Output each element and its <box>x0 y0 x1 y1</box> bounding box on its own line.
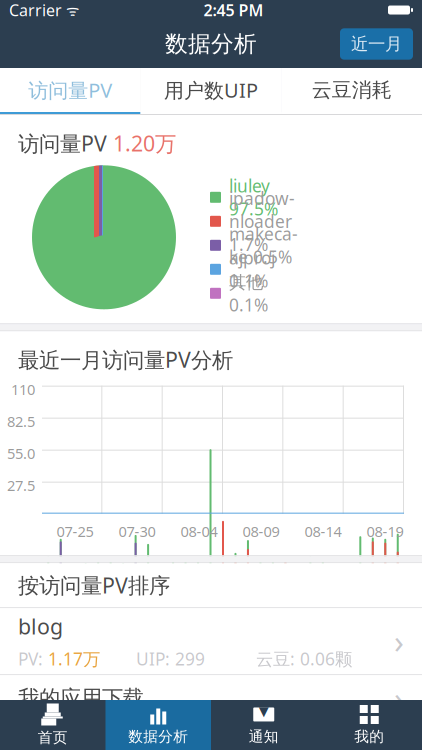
staticText: PV: <box>18 647 48 670</box>
staticText: › <box>394 620 404 662</box>
button[interactable]: 近一月 <box>340 28 413 60</box>
button[interactable]: 访问量PV <box>0 68 141 114</box>
button[interactable]: ▾ <box>211 700 316 750</box>
staticText: 云豆: 0.06颗 <box>256 647 352 670</box>
staticText: 最近一月访问量PV分析 <box>18 345 233 374</box>
staticText: 1.20万 <box>113 129 176 157</box>
staticText: 数据分析 <box>165 30 257 58</box>
staticText: liuley 97.5% <box>229 174 278 220</box>
staticText: ᯤ <box>62 0 79 20</box>
button[interactable]: 首页 <box>0 700 105 750</box>
button[interactable]: 云豆消耗 <box>281 68 422 114</box>
staticText: 通知 <box>249 727 279 745</box>
staticText: 首页 <box>38 728 68 746</box>
staticText: 08-19 <box>366 522 403 541</box>
staticText: UIP: 299 <box>136 647 205 670</box>
button[interactable]: 用户数UIP <box>141 68 281 114</box>
staticText: 访问量PV <box>28 77 112 103</box>
staticText: 82.5 <box>7 412 35 431</box>
button[interactable]: 数据分析 <box>105 700 211 750</box>
staticText: 2:45 PM <box>203 0 263 21</box>
staticText: 55.0 <box>7 444 35 463</box>
staticText: Carrier <box>9 0 62 21</box>
staticText: ipadownloader 1.7% <box>229 187 295 256</box>
staticText: 访问量PV <box>18 129 113 157</box>
staticText: 云豆消耗 <box>312 78 392 102</box>
staticText: ajproj 0.1% <box>229 246 275 292</box>
staticText: 08-14 <box>304 522 341 541</box>
staticText: 用户数UIP <box>164 77 258 103</box>
staticText: 1.17万 <box>48 647 100 670</box>
staticText: 我的 <box>354 727 384 745</box>
staticText: 07-30 <box>118 522 155 541</box>
staticText: 08-09 <box>242 522 279 541</box>
staticText: 其他 0.1% <box>229 270 268 316</box>
staticText: ▾ <box>259 699 269 722</box>
staticText: › <box>394 677 404 719</box>
staticText: makecake 0.5% <box>229 222 298 268</box>
button[interactable]: blog <box>0 608 422 674</box>
staticText: 近一月 <box>351 33 402 55</box>
staticText: 07-25 <box>56 522 93 541</box>
button[interactable]: 我的 <box>316 700 422 750</box>
staticText: 数据分析 <box>128 727 188 745</box>
staticText: 27.5 <box>7 476 35 495</box>
staticText: 110 <box>11 380 35 399</box>
staticText: blog <box>18 612 63 640</box>
staticText: 按访问量PV排序 <box>18 571 170 599</box>
staticText: 我的应用下载 <box>18 685 144 711</box>
staticText: 08-04 <box>180 522 217 541</box>
button[interactable]: 我的应用下载 <box>0 675 422 721</box>
